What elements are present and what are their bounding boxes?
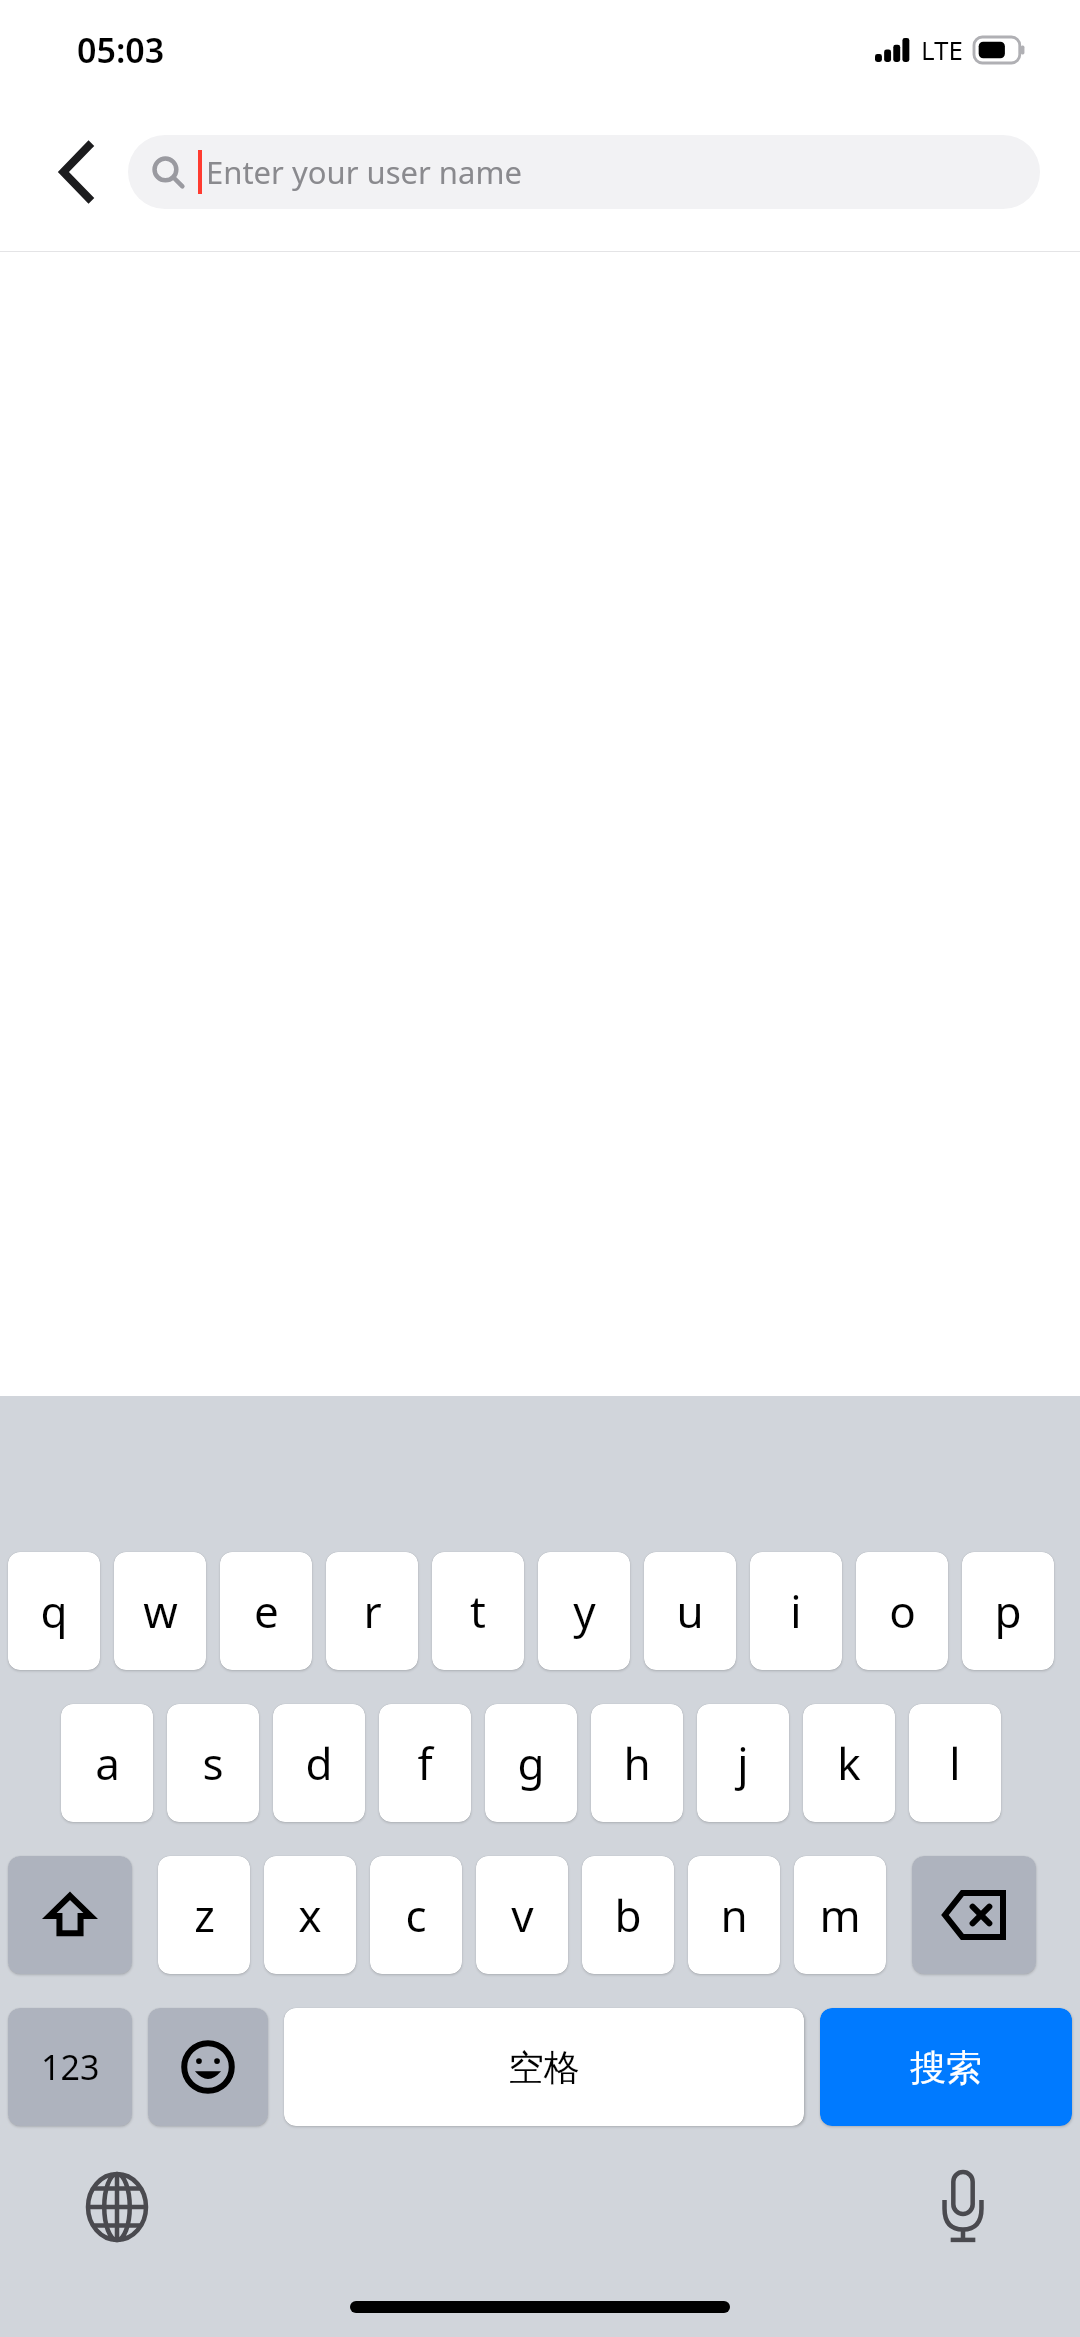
button[interactable]: q bbox=[8, 1552, 100, 1670]
staticText: f bbox=[417, 1733, 433, 1793]
button[interactable]: n bbox=[688, 1856, 780, 1974]
button[interactable]: h bbox=[591, 1704, 683, 1822]
staticText: s bbox=[202, 1733, 224, 1793]
staticText: v bbox=[511, 1885, 534, 1945]
button[interactable]: Emoji bbox=[148, 2008, 268, 2126]
button[interactable]: t bbox=[432, 1552, 524, 1670]
staticText: LTE bbox=[921, 32, 964, 67]
staticText: e bbox=[254, 1581, 279, 1641]
button[interactable]: p bbox=[962, 1552, 1054, 1670]
button[interactable]: v bbox=[476, 1856, 568, 1974]
button[interactable]: Shift bbox=[8, 1856, 132, 1974]
staticText: b bbox=[614, 1885, 642, 1945]
button[interactable]: Back bbox=[32, 128, 120, 216]
button[interactable]: f bbox=[379, 1704, 471, 1822]
staticText: w bbox=[143, 1581, 178, 1641]
button[interactable]: r bbox=[326, 1552, 418, 1670]
staticText: c bbox=[405, 1885, 427, 1945]
button[interactable]: Backspace bbox=[912, 1856, 1036, 1974]
button[interactable]: x bbox=[264, 1856, 356, 1974]
button[interactable]: Dictation bbox=[918, 2162, 1008, 2252]
staticText: q bbox=[40, 1581, 68, 1641]
staticText: o bbox=[889, 1581, 916, 1641]
button[interactable]: y bbox=[538, 1552, 630, 1670]
button[interactable]: z bbox=[158, 1856, 250, 1974]
button[interactable]: u bbox=[644, 1552, 736, 1670]
staticText: Enter your user name bbox=[206, 151, 522, 193]
button[interactable]: m bbox=[794, 1856, 886, 1974]
staticText: p bbox=[994, 1581, 1022, 1641]
button[interactable]: s bbox=[167, 1704, 259, 1822]
staticText: 05:03 bbox=[77, 27, 165, 73]
button[interactable]: 空格 bbox=[284, 2008, 804, 2126]
staticText: i bbox=[790, 1581, 802, 1641]
staticText: 搜索 bbox=[910, 2045, 982, 2090]
button[interactable]: a bbox=[61, 1704, 153, 1822]
button[interactable]: g bbox=[485, 1704, 577, 1822]
button[interactable]: 123 bbox=[8, 2008, 132, 2126]
staticText: 123 bbox=[41, 2044, 100, 2090]
staticText: z bbox=[194, 1885, 215, 1945]
button[interactable]: k bbox=[803, 1704, 895, 1822]
staticText: r bbox=[363, 1581, 382, 1641]
staticText: m bbox=[819, 1885, 861, 1945]
staticText: a bbox=[95, 1733, 120, 1793]
staticText: n bbox=[720, 1885, 748, 1945]
button[interactable]: j bbox=[697, 1704, 789, 1822]
staticText: h bbox=[623, 1733, 651, 1793]
button[interactable]: Enter your user name bbox=[128, 135, 1040, 209]
button[interactable]: d bbox=[273, 1704, 365, 1822]
button[interactable]: b bbox=[582, 1856, 674, 1974]
staticText: u bbox=[676, 1581, 704, 1641]
button[interactable]: i bbox=[750, 1552, 842, 1670]
staticText: x bbox=[298, 1885, 322, 1945]
staticText: k bbox=[837, 1733, 861, 1793]
button[interactable]: e bbox=[220, 1552, 312, 1670]
staticText: j bbox=[737, 1733, 749, 1793]
button[interactable]: 搜索 bbox=[820, 2008, 1072, 2126]
button[interactable]: l bbox=[909, 1704, 1001, 1822]
button[interactable]: o bbox=[856, 1552, 948, 1670]
staticText: l bbox=[949, 1733, 961, 1793]
staticText: d bbox=[305, 1733, 333, 1793]
staticText: y bbox=[573, 1581, 596, 1641]
button[interactable]: Change keyboard bbox=[72, 2162, 162, 2252]
staticText: g bbox=[517, 1733, 545, 1793]
staticText: t bbox=[470, 1581, 486, 1641]
button[interactable]: w bbox=[114, 1552, 206, 1670]
staticText: 空格 bbox=[508, 2045, 580, 2090]
button[interactable]: c bbox=[370, 1856, 462, 1974]
